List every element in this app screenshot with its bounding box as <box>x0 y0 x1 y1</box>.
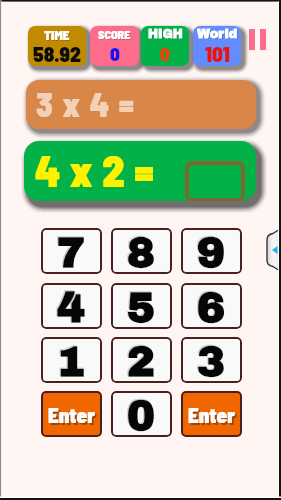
staticText: HIGH <box>149 28 184 41</box>
button[interactable]: 7 <box>41 228 102 274</box>
staticText: 8 <box>127 230 156 274</box>
staticText: 5 <box>126 284 155 329</box>
button[interactable]: 3 <box>181 337 242 383</box>
button[interactable]: Pause game <box>249 28 269 50</box>
staticText: 7 <box>57 230 86 274</box>
staticText: 0 <box>126 392 155 437</box>
staticText: 4 <box>56 284 85 329</box>
staticText: 6 <box>197 285 226 329</box>
staticText: 101 <box>205 41 230 62</box>
staticText: 3 x 4 = <box>36 84 136 124</box>
staticText: 0 <box>127 393 156 437</box>
button[interactable]: 5 <box>111 283 172 329</box>
button[interactable]: 0 <box>111 391 172 437</box>
button[interactable]: 4 x 2 = <box>24 141 256 201</box>
button[interactable]: TIME <box>28 26 86 66</box>
staticText: 6 <box>196 284 225 329</box>
staticText: Enter <box>48 402 96 427</box>
staticText: Enter <box>50 404 98 429</box>
staticText: 3 <box>197 339 226 383</box>
staticText: 7 <box>56 229 85 274</box>
button[interactable]: 4 <box>41 283 102 329</box>
staticText: Enter <box>190 404 238 429</box>
staticText: 4 <box>57 285 86 329</box>
staticText: World <box>198 28 239 41</box>
button[interactable]: 1 <box>41 337 102 383</box>
staticText: 2 <box>126 338 155 383</box>
button[interactable]: World <box>193 26 241 66</box>
button[interactable]: 8 <box>111 228 172 274</box>
staticText: 1 <box>56 338 85 383</box>
staticText: Enter <box>188 402 236 427</box>
staticText: 9 <box>196 229 225 274</box>
button[interactable]: SCORE <box>90 26 139 66</box>
staticText: World <box>197 27 238 40</box>
staticText: TIME <box>45 28 71 41</box>
staticText: 0 <box>110 42 120 63</box>
button[interactable]: 2 <box>111 337 172 383</box>
staticText: 8 <box>126 229 155 274</box>
button[interactable]: HIGH <box>141 26 189 66</box>
button[interactable]: Open side menu <box>267 232 280 268</box>
staticText: 1 <box>57 339 86 383</box>
button[interactable]: 3 x 4 = <box>26 80 256 129</box>
button[interactable]: 9 <box>181 228 242 274</box>
staticText: 2 <box>127 339 156 383</box>
staticText: SCORE <box>98 27 131 40</box>
staticText: SCORE <box>99 28 132 41</box>
staticText: 9 <box>197 230 226 274</box>
staticText: TIME <box>44 27 70 40</box>
button[interactable]: Enter <box>181 391 242 437</box>
staticText: 3 <box>196 338 225 383</box>
staticText: HIGH <box>148 27 183 40</box>
button[interactable]: 6 <box>181 283 242 329</box>
button[interactable]: Enter <box>41 391 102 437</box>
staticText: 4 x 2 = <box>35 144 155 196</box>
staticText: 5 <box>127 285 156 329</box>
staticText: 58.92 <box>33 41 81 62</box>
staticText: 0 <box>160 42 170 63</box>
